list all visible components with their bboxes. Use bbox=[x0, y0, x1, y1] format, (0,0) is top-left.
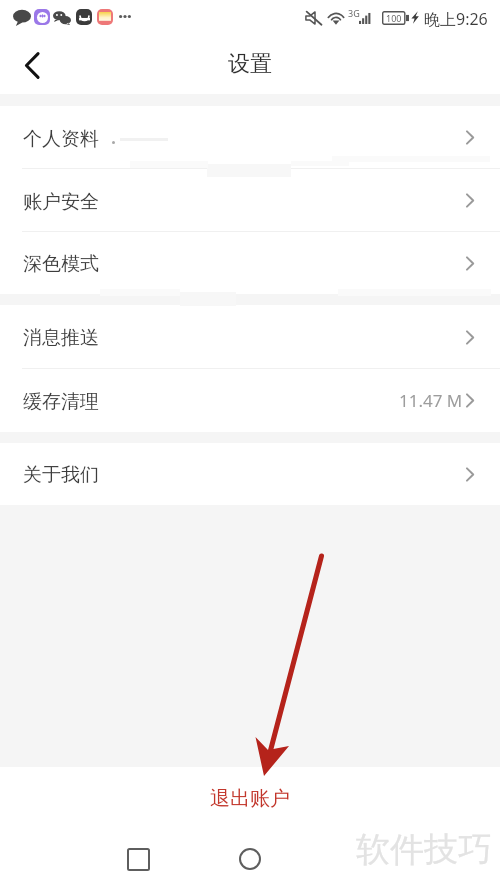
button[interactable]: 缓存清理 bbox=[0, 369, 500, 432]
staticText: 关于我们 bbox=[23, 463, 99, 487]
button[interactable]: 消息推送 bbox=[0, 305, 500, 369]
staticText: 11.47 M bbox=[399, 389, 463, 412]
staticText: 缓存清理 bbox=[23, 390, 99, 414]
button[interactable]: Back bbox=[10, 43, 54, 87]
button[interactable]: 深色模式 bbox=[0, 232, 500, 294]
staticText: 3G bbox=[348, 7, 360, 19]
staticText: 晚上9:26 bbox=[424, 8, 488, 30]
staticText: 深色模式 bbox=[23, 252, 99, 276]
staticText: 个人资料 bbox=[23, 127, 99, 151]
button[interactable]: 个人资料 bbox=[0, 106, 500, 169]
staticText: 100 bbox=[386, 12, 402, 24]
button[interactable]: Recents bbox=[114, 835, 162, 883]
staticText: 退出账户 bbox=[210, 786, 290, 811]
staticText: 设置 bbox=[228, 50, 272, 78]
staticText: 消息推送 bbox=[23, 326, 99, 350]
button[interactable]: Home bbox=[226, 835, 274, 883]
button[interactable]: 退出账户 bbox=[0, 767, 500, 823]
button[interactable]: 关于我们 bbox=[0, 443, 500, 505]
button[interactable]: 账户安全 bbox=[0, 169, 500, 232]
staticText: 软件技巧 bbox=[356, 828, 492, 871]
staticText: 账户安全 bbox=[23, 190, 99, 214]
